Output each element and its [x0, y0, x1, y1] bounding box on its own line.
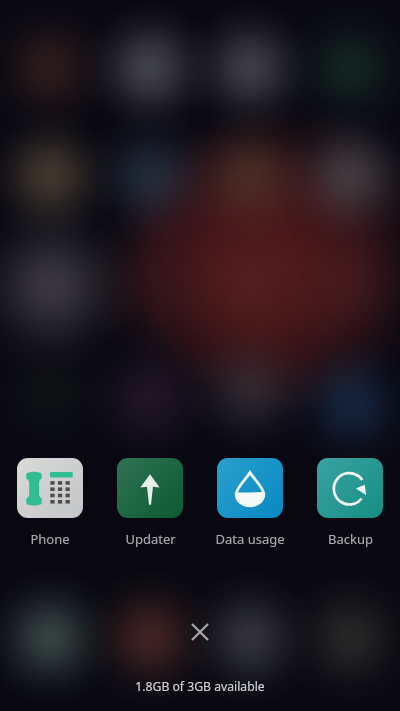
staticText: Phone — [30, 530, 70, 548]
button[interactable]: Close — [180, 612, 220, 652]
staticText: Backup — [328, 530, 373, 548]
staticText: Updater — [125, 530, 176, 548]
staticText: 1.8GB of 3GB available — [135, 678, 265, 695]
button[interactable]: Data usage — [200, 458, 300, 548]
staticText: Data usage — [215, 530, 285, 548]
button[interactable]: Updater — [100, 458, 200, 548]
button[interactable]: Phone — [0, 458, 100, 548]
button[interactable]: Backup — [300, 458, 400, 548]
